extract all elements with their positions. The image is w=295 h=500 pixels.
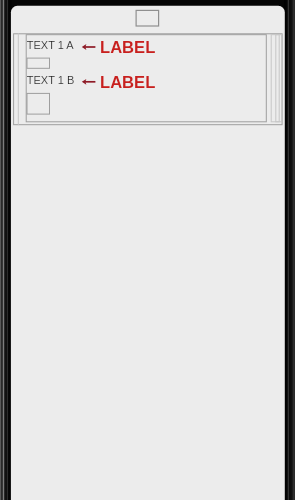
button[interactable]: Annotated phone screen mockup (0, 0, 295, 500)
